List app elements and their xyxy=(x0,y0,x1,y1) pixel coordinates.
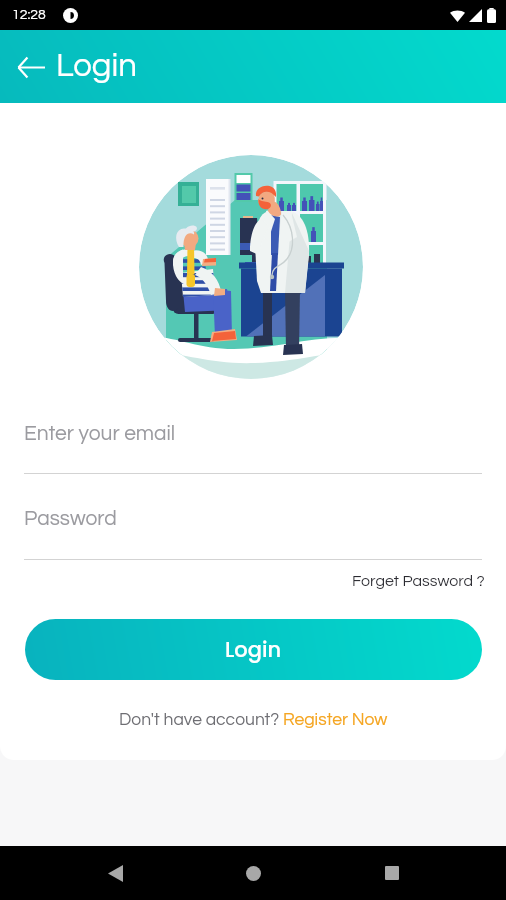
staticText: 12:28 xyxy=(12,8,46,22)
button[interactable]: Home xyxy=(229,849,277,897)
button[interactable]: Back xyxy=(91,849,139,897)
button[interactable]: Login xyxy=(25,619,482,680)
button[interactable]: Recent apps xyxy=(368,849,416,897)
staticText: Login xyxy=(225,635,282,664)
staticText: Login xyxy=(56,49,137,83)
button[interactable]: Forget Password ? xyxy=(344,567,506,595)
staticText: Don't have account? Register Now xyxy=(119,711,388,729)
staticText: Forget Password ? xyxy=(352,573,485,589)
button[interactable]: Back xyxy=(10,46,52,88)
button[interactable]: Don't have account? Register Now xyxy=(111,707,396,733)
staticText: Password xyxy=(24,508,117,530)
staticText: Enter your email xyxy=(24,423,176,445)
